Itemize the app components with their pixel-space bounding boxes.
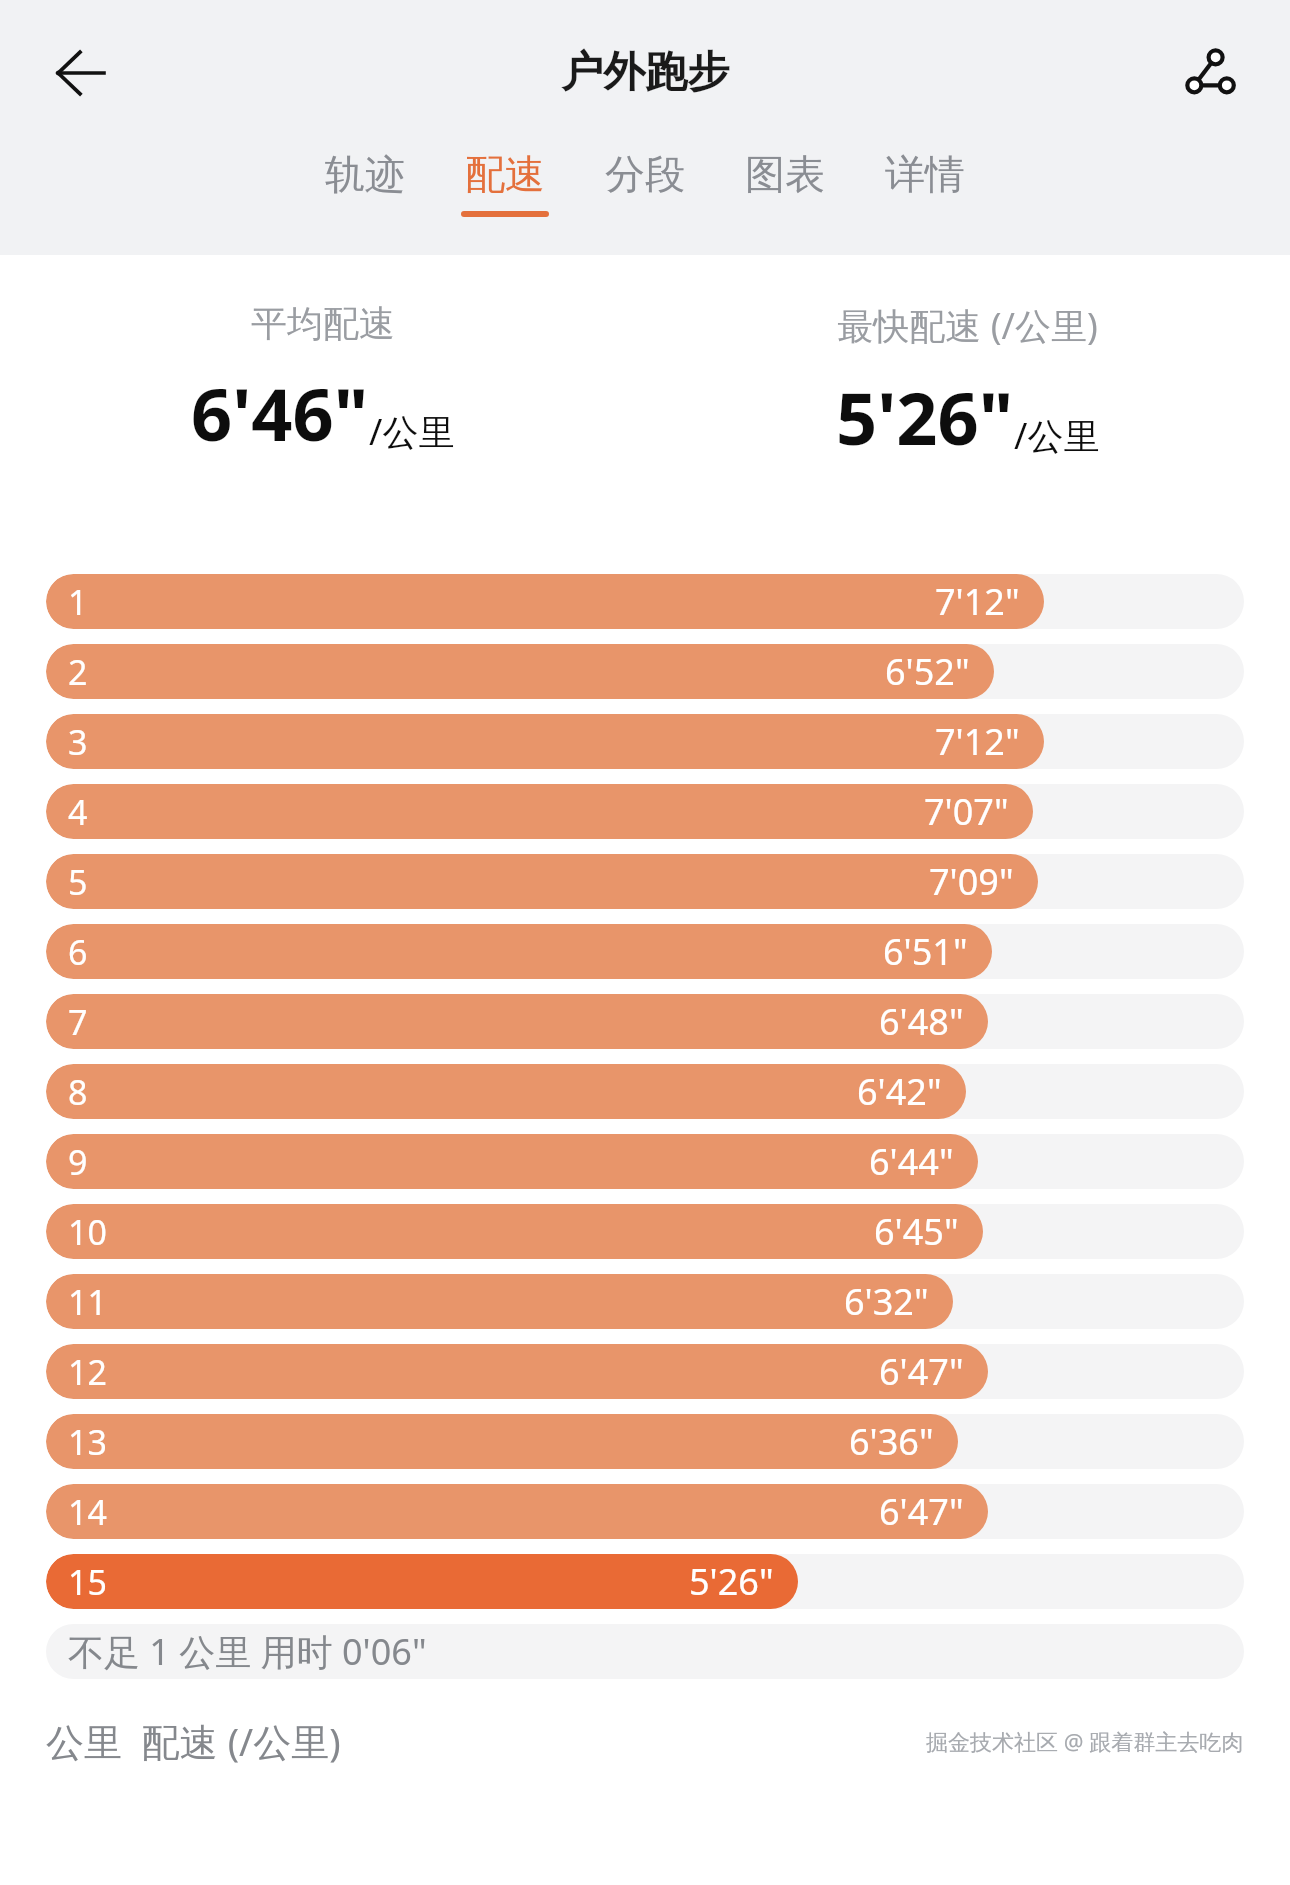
button[interactable]: 3 (46, 714, 1244, 769)
button[interactable]: 不足 1 公里 用时 0'06" (46, 1624, 1244, 1679)
button[interactable]: 12 (46, 1344, 1244, 1399)
button[interactable]: Share (1172, 35, 1248, 111)
staticText: 13 (68, 1419, 107, 1465)
staticText: 5'26" (689, 1557, 774, 1606)
staticText: 6'52" (885, 647, 970, 696)
button[interactable]: 11 (46, 1274, 1244, 1329)
staticText: 14 (68, 1489, 107, 1535)
button[interactable]: 10 (46, 1204, 1244, 1259)
staticText: 7 (68, 999, 88, 1045)
staticText: 6'46" (191, 364, 369, 462)
staticText: 4 (68, 789, 88, 835)
button[interactable]: 6 (46, 924, 1244, 979)
staticText: 15 (68, 1559, 107, 1605)
button[interactable]: 1 (46, 574, 1244, 629)
staticText: 平均配速 (251, 301, 395, 346)
button[interactable]: 轨迹 (295, 145, 435, 221)
staticText: 5'26" (836, 368, 1014, 466)
staticText: 不足 1 公里 用时 0'06" (68, 1627, 427, 1676)
staticText: 分段 (605, 149, 685, 199)
staticText: 公里 配速 (/公里) (46, 1715, 341, 1767)
staticText: 7'07" (924, 787, 1009, 836)
staticText: 1 (68, 579, 88, 625)
button[interactable]: 图表 (715, 145, 855, 221)
staticText: 2 (68, 649, 88, 695)
staticText: 8 (68, 1069, 88, 1115)
staticText: /公里 (1014, 411, 1100, 460)
button[interactable]: 9 (46, 1134, 1244, 1189)
button[interactable]: 分段 (575, 145, 715, 221)
staticText: 7'12" (935, 577, 1020, 626)
staticText: 6'32" (844, 1277, 929, 1326)
staticText: 配速 (465, 149, 545, 199)
button[interactable]: 14 (46, 1484, 1244, 1539)
button[interactable]: 2 (46, 644, 1244, 699)
staticText: 12 (68, 1349, 107, 1395)
button[interactable]: Back (42, 35, 118, 111)
staticText: /公里 (369, 407, 455, 456)
staticText: 6'47" (879, 1487, 964, 1536)
staticText: 户外跑步 (561, 46, 729, 99)
button[interactable]: 4 (46, 784, 1244, 839)
staticText: 6'42" (857, 1067, 942, 1116)
staticText: 6'36" (849, 1417, 934, 1466)
button[interactable]: 详情 (855, 145, 995, 221)
staticText: 11 (68, 1279, 107, 1325)
staticText: 9 (68, 1139, 88, 1185)
button[interactable]: 7 (46, 994, 1244, 1049)
staticText: 6'48" (879, 997, 964, 1046)
staticText: 最快配速 (/公里) (837, 301, 1098, 350)
staticText: 7'09" (929, 857, 1014, 906)
staticText: 10 (68, 1209, 107, 1255)
button[interactable]: 13 (46, 1414, 1244, 1469)
button[interactable]: 8 (46, 1064, 1244, 1119)
staticText: 详情 (885, 149, 965, 199)
staticText: 5 (68, 859, 88, 905)
staticText: 6'44" (869, 1137, 954, 1186)
staticText: 6 (68, 929, 88, 975)
button[interactable]: 15 (46, 1554, 1244, 1609)
staticText: 7'12" (935, 717, 1020, 766)
staticText: 掘金技术社区 @ 跟着群主去吃肉 (926, 1726, 1244, 1756)
staticText: 6'51" (883, 927, 968, 976)
staticText: 3 (68, 719, 88, 765)
staticText: 轨迹 (325, 149, 405, 199)
button[interactable]: 配速 (435, 145, 575, 221)
staticText: 图表 (745, 149, 825, 199)
button[interactable]: 5 (46, 854, 1244, 909)
staticText: 6'45" (874, 1207, 959, 1256)
staticText: 6'47" (879, 1347, 964, 1396)
